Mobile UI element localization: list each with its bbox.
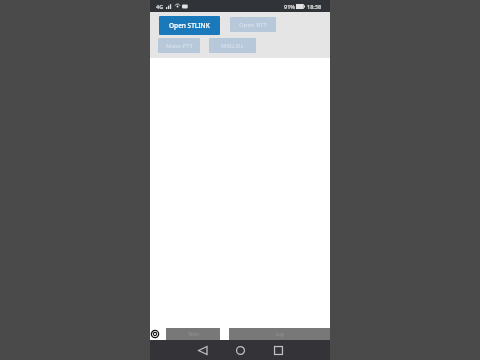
staticText: MSG-DL [221, 42, 244, 50]
button[interactable]: Back [193, 340, 213, 360]
button[interactable]: Open BTT [230, 17, 276, 32]
staticText: Open BTT [239, 21, 267, 29]
button[interactable]: Recent apps [268, 340, 288, 360]
button[interactable]: Mass PTT [158, 38, 200, 53]
staticText: 4G [156, 3, 164, 10]
staticText: 18:38 [307, 3, 322, 10]
staticText: Log [276, 331, 284, 337]
button[interactable]: Settings [150, 328, 166, 340]
button[interactable]: Home [230, 340, 250, 360]
staticText: Mass PTT [166, 42, 193, 50]
staticText: 91% [284, 3, 295, 10]
button[interactable]: MSG-DL [209, 38, 256, 53]
staticText: Term [188, 331, 199, 337]
button[interactable]: Open STLINK [159, 16, 220, 35]
staticText: Open STLINK [169, 21, 210, 30]
